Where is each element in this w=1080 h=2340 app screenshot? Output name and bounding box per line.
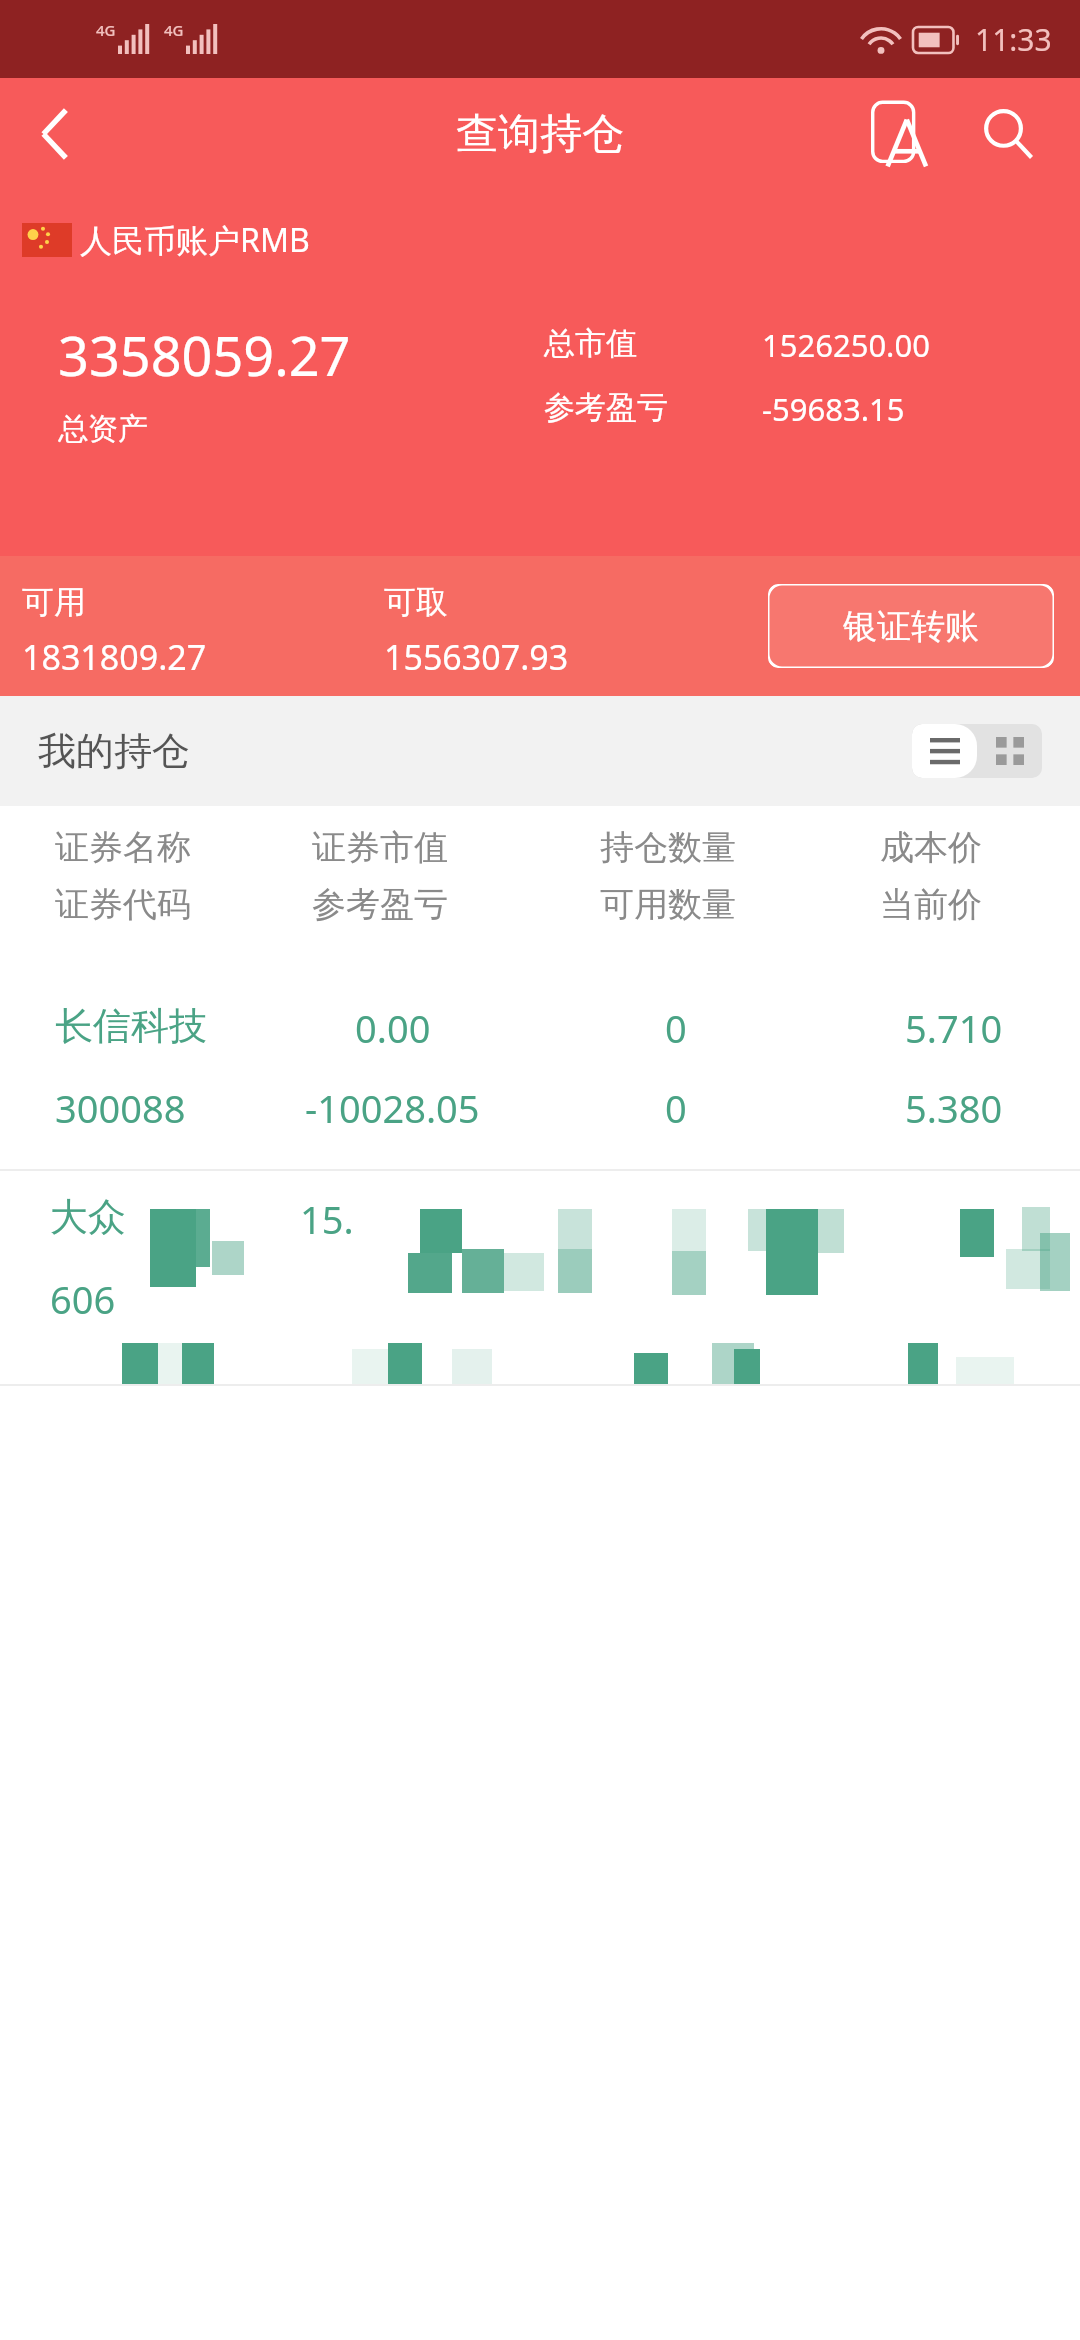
- staticText: 总资产: [58, 410, 148, 448]
- staticText: 查询持仓: [456, 108, 624, 161]
- staticText: 当前价: [880, 883, 982, 926]
- staticText: 人民币账户RMB: [80, 218, 310, 262]
- staticText: 证券名称: [55, 826, 191, 869]
- staticText: 银证转账: [843, 605, 979, 648]
- staticText: 证券代码: [55, 883, 191, 926]
- button[interactable]: 银证转账: [768, 584, 1054, 668]
- staticText: 1526250.00: [762, 324, 930, 366]
- staticText: 可取: [384, 582, 448, 622]
- staticText: 3358059.27: [58, 318, 351, 392]
- staticText: 可用: [22, 582, 86, 622]
- button[interactable]: Search: [955, 78, 1060, 190]
- staticText: 可用数量: [600, 883, 736, 926]
- staticText: 0: [665, 1002, 687, 1054]
- button[interactable]: List view: [912, 724, 977, 778]
- staticText: 5.380: [905, 1082, 1003, 1134]
- staticText: 4G: [96, 20, 116, 40]
- staticText: 15.: [300, 1193, 354, 1245]
- button[interactable]: Back: [0, 78, 110, 190]
- staticText: 1556307.93: [384, 634, 569, 680]
- staticText: 我的持仓: [38, 727, 190, 775]
- staticText: -10028.05: [305, 1082, 480, 1134]
- staticText: 5.710: [905, 1002, 1003, 1054]
- staticText: 长信科技: [55, 1002, 207, 1050]
- staticText: 606: [50, 1273, 116, 1325]
- staticText: 参考盈亏: [312, 883, 448, 926]
- staticText: 0.00: [355, 1002, 431, 1054]
- staticText: 持仓数量: [600, 826, 736, 869]
- staticText: 0: [665, 1082, 687, 1134]
- staticText: 参考盈亏: [544, 388, 762, 427]
- staticText: 4G: [164, 20, 184, 40]
- staticText: 证券市值: [312, 826, 448, 869]
- button[interactable]: 长信科技: [0, 974, 1080, 1169]
- staticText: 成本价: [880, 826, 982, 869]
- staticText: 大众: [50, 1193, 126, 1241]
- button[interactable]: Grid view: [977, 724, 1042, 778]
- staticText: 总市值: [544, 324, 762, 363]
- button[interactable]: 大众: [0, 1171, 1080, 1384]
- staticText: 300088: [55, 1082, 186, 1134]
- staticText: 11:33: [975, 19, 1052, 60]
- button[interactable]: Font size: [845, 78, 955, 190]
- staticText: -59683.15: [762, 388, 905, 430]
- staticText: 1831809.27: [22, 634, 207, 680]
